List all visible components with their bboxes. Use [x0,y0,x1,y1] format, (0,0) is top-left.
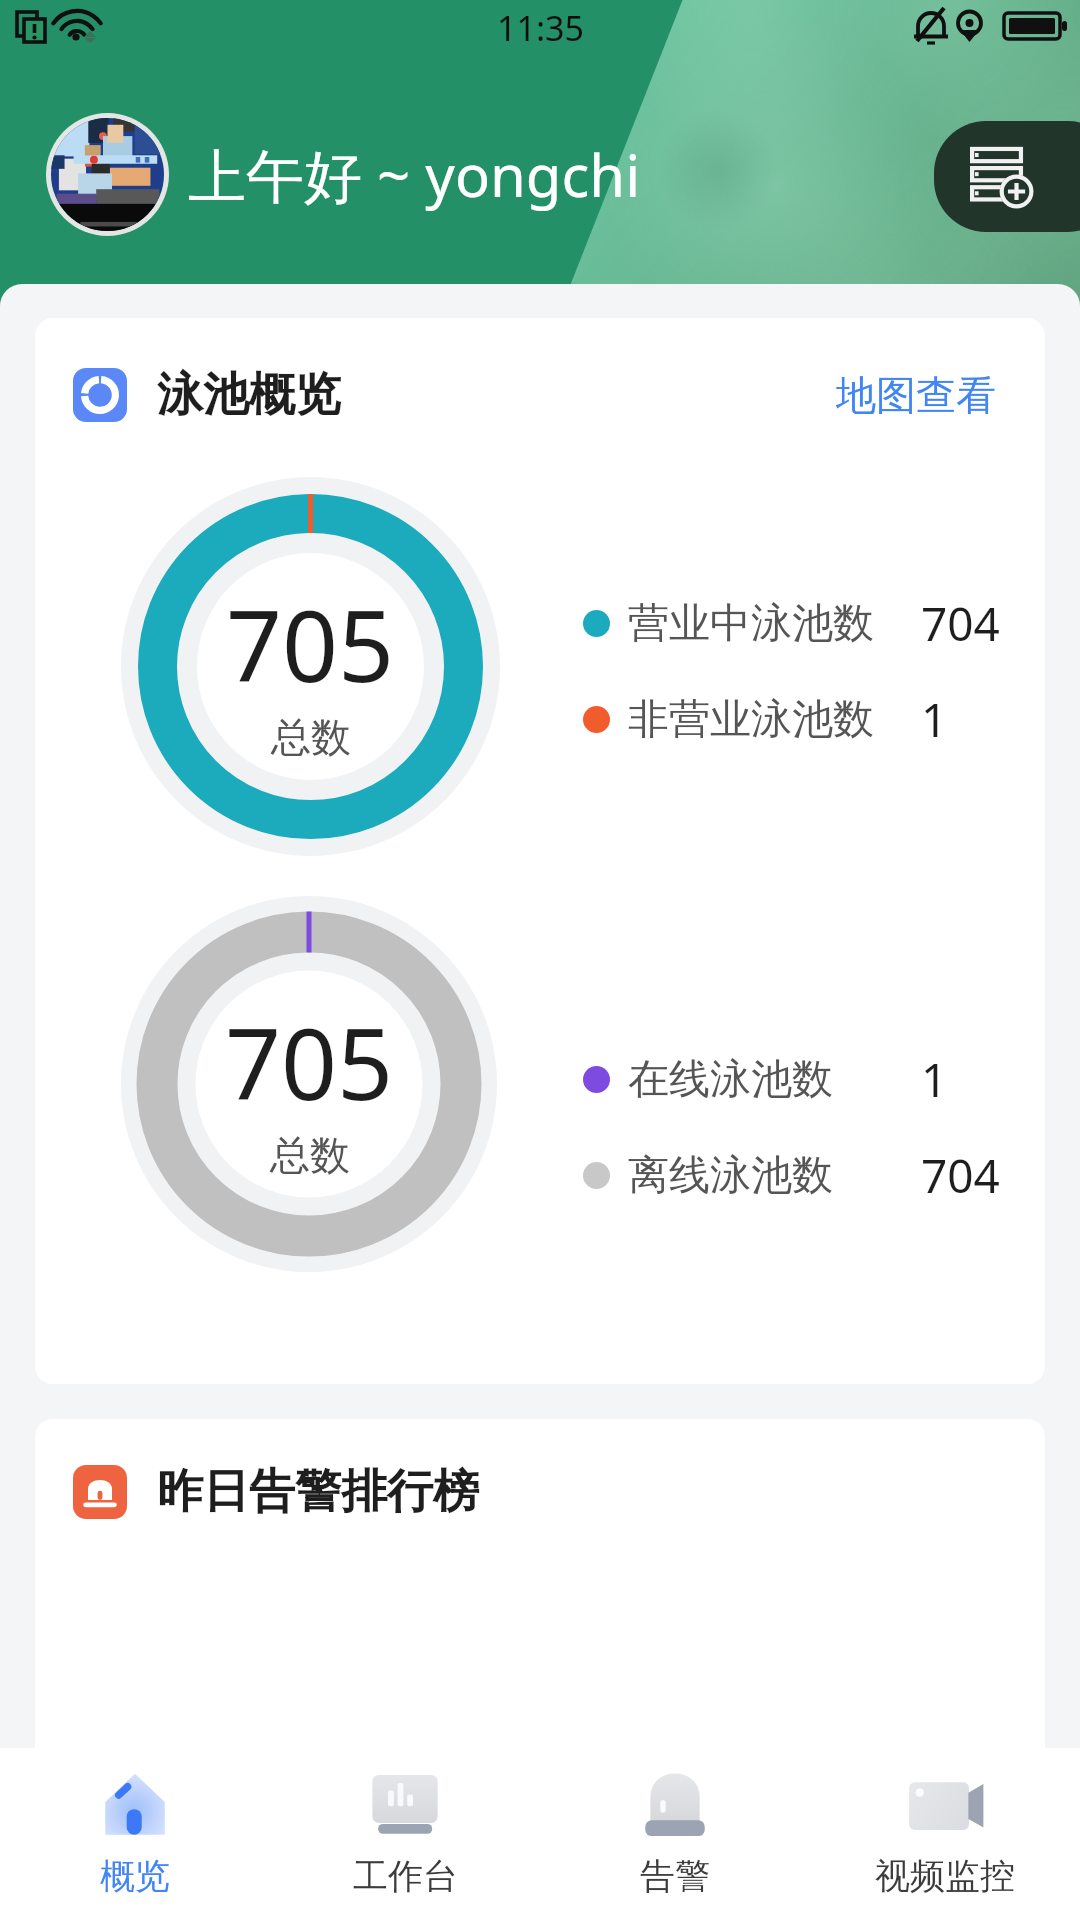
staticText: 昨日告警排行榜 [157,1463,479,1521]
staticText: 离线泳池数 [628,1150,833,1202]
staticText: 概览 [100,1854,170,1898]
button[interactable]: 视频监控 [810,1748,1080,1920]
staticText: 在线泳池数 [628,1054,833,1106]
button[interactable]: 工作台 [270,1748,540,1920]
staticText: 总数 [271,712,351,762]
staticText: 上午好 ~ yongchi [188,135,641,214]
staticText: 非营业泳池数 [628,694,874,746]
staticText: 704 [921,1144,1000,1207]
staticText: 705 [225,995,394,1128]
staticText: 地图查看 [836,370,996,420]
staticText: 1 [921,1048,948,1111]
staticText: 营业中泳池数 [628,598,874,650]
staticText: 705 [226,577,395,710]
button[interactable]: Add device [934,121,1080,232]
staticText: 泳池概览 [157,366,341,424]
staticText: 1 [921,688,948,751]
button[interactable]: 告警 [540,1748,810,1920]
staticText: 11:35 [497,5,584,51]
staticText: 告警 [640,1854,710,1898]
staticText: 视频监控 [875,1854,1015,1898]
button[interactable]: Profile avatar [46,113,169,236]
button[interactable]: 地图查看 [822,364,996,426]
staticText: 总数 [270,1130,350,1180]
staticText: 工作台 [353,1854,458,1898]
staticText: 704 [921,592,1000,655]
button[interactable]: 概览 [0,1748,270,1920]
